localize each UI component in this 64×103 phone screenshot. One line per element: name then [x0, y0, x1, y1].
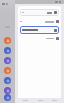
- button[interactable]: Nav item 2: [36, 98, 44, 103]
- button[interactable]: Workspace Blue: [4, 47, 11, 54]
- button[interactable]: Attach: [54, 29, 57, 32]
- button[interactable]: Attach: [20, 26, 59, 34]
- button[interactable]: Nav item 3: [50, 98, 58, 103]
- button[interactable]: Account: [4, 94, 11, 101]
- button[interactable]: Workspace Sky: [4, 77, 11, 84]
- button[interactable]: Workspace Orange: [4, 67, 11, 74]
- button[interactable]: Nav item 1: [21, 98, 29, 103]
- button[interactable]: More options: [56, 37, 59, 40]
- button[interactable]: Copy: [56, 20, 59, 23]
- button[interactable]: Send: [54, 11, 57, 14]
- button[interactable]: Workspace Violet: [4, 87, 11, 94]
- button[interactable]: Workspace Purple: [4, 57, 11, 64]
- button[interactable]: Workspace Alpha: [4, 37, 11, 44]
- button[interactable]: Send: [20, 9, 59, 16]
